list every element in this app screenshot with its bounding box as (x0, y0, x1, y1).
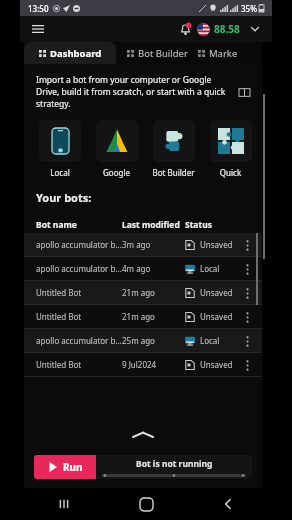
staticText: Unsaved (200, 287, 233, 298)
staticText: Status (185, 219, 240, 231)
button[interactable]: More options (240, 354, 254, 376)
staticText: Local (50, 167, 70, 178)
staticText: apollo accumulator bot (36, 263, 122, 274)
button[interactable]: Run (34, 455, 96, 479)
staticText: Bot Builder (138, 47, 188, 60)
staticText: 13:50 (28, 3, 49, 14)
staticText: Bot Builder (152, 167, 195, 178)
staticText: Quick strategy (207, 167, 254, 178)
button[interactable]: apollo accumulator bot (24, 257, 262, 280)
button[interactable]: Dashboard (24, 42, 116, 64)
button[interactable]: apollo accumulator b... (24, 233, 262, 256)
staticText: Unsaved (200, 239, 233, 250)
button[interactable]: Notifications (175, 19, 195, 39)
staticText: 3m ago (122, 239, 185, 250)
staticText: 4m ago (122, 263, 185, 274)
button[interactable]: Quick strategy (207, 120, 254, 178)
staticText: Bot is not running (136, 458, 213, 470)
button[interactable]: More options (240, 330, 254, 352)
staticText: Unsaved (200, 359, 233, 370)
button[interactable]: More options (240, 258, 254, 280)
button[interactable]: Local (36, 120, 83, 178)
button[interactable]: Bot Builder (150, 120, 197, 178)
staticText: 25m ago (122, 335, 185, 346)
staticText: 35% (241, 3, 257, 14)
button[interactable]: More options (240, 234, 254, 256)
staticText: Unsaved (200, 311, 233, 322)
button[interactable]: Untitled Bot (24, 281, 262, 304)
staticText: Your bots: (36, 190, 92, 205)
button[interactable]: Menu (28, 19, 48, 39)
button[interactable]: Back (210, 488, 246, 520)
staticText: Run (63, 460, 83, 474)
staticText: Local (200, 263, 220, 274)
staticText: Untitled Bot (36, 359, 122, 370)
button[interactable]: Marke (198, 42, 262, 64)
staticText: 9 Jul2024 (122, 359, 185, 370)
button[interactable]: Tutorials (234, 82, 254, 102)
staticText: apollo accumulator b... (36, 239, 122, 250)
staticText: Dashboard (50, 47, 102, 60)
button[interactable]: Home (128, 488, 164, 520)
button[interactable]: Expand (246, 20, 264, 38)
staticText: Untitled Bot (36, 287, 122, 298)
button[interactable]: Google Drive (93, 120, 140, 178)
staticText: Last modified (122, 219, 185, 231)
button[interactable]: Untitled Bot (24, 353, 262, 376)
button[interactable]: More options (240, 282, 254, 304)
button[interactable]: Collapse panel (24, 424, 262, 446)
staticText: 21m ago (122, 287, 185, 298)
staticText: apollo accumulator bot (36, 335, 122, 346)
button[interactable]: Currency (197, 23, 210, 36)
staticText: Untitled Bot (36, 311, 122, 322)
button[interactable]: Recents (46, 488, 82, 520)
staticText: 21m ago (122, 311, 185, 322)
button[interactable]: Bot Builder (116, 42, 198, 64)
button[interactable]: Untitled Bot (24, 305, 262, 328)
staticText: Bot name (36, 219, 122, 231)
button[interactable]: More options (240, 306, 254, 328)
staticText: 88.58 (214, 22, 240, 36)
staticText: Import a bot from your computer or Googl… (36, 74, 228, 110)
button[interactable]: apollo accumulator bot (24, 329, 262, 352)
staticText: Google Drive (93, 167, 140, 178)
staticText: Marke (209, 47, 238, 60)
staticText: Local (200, 335, 220, 346)
